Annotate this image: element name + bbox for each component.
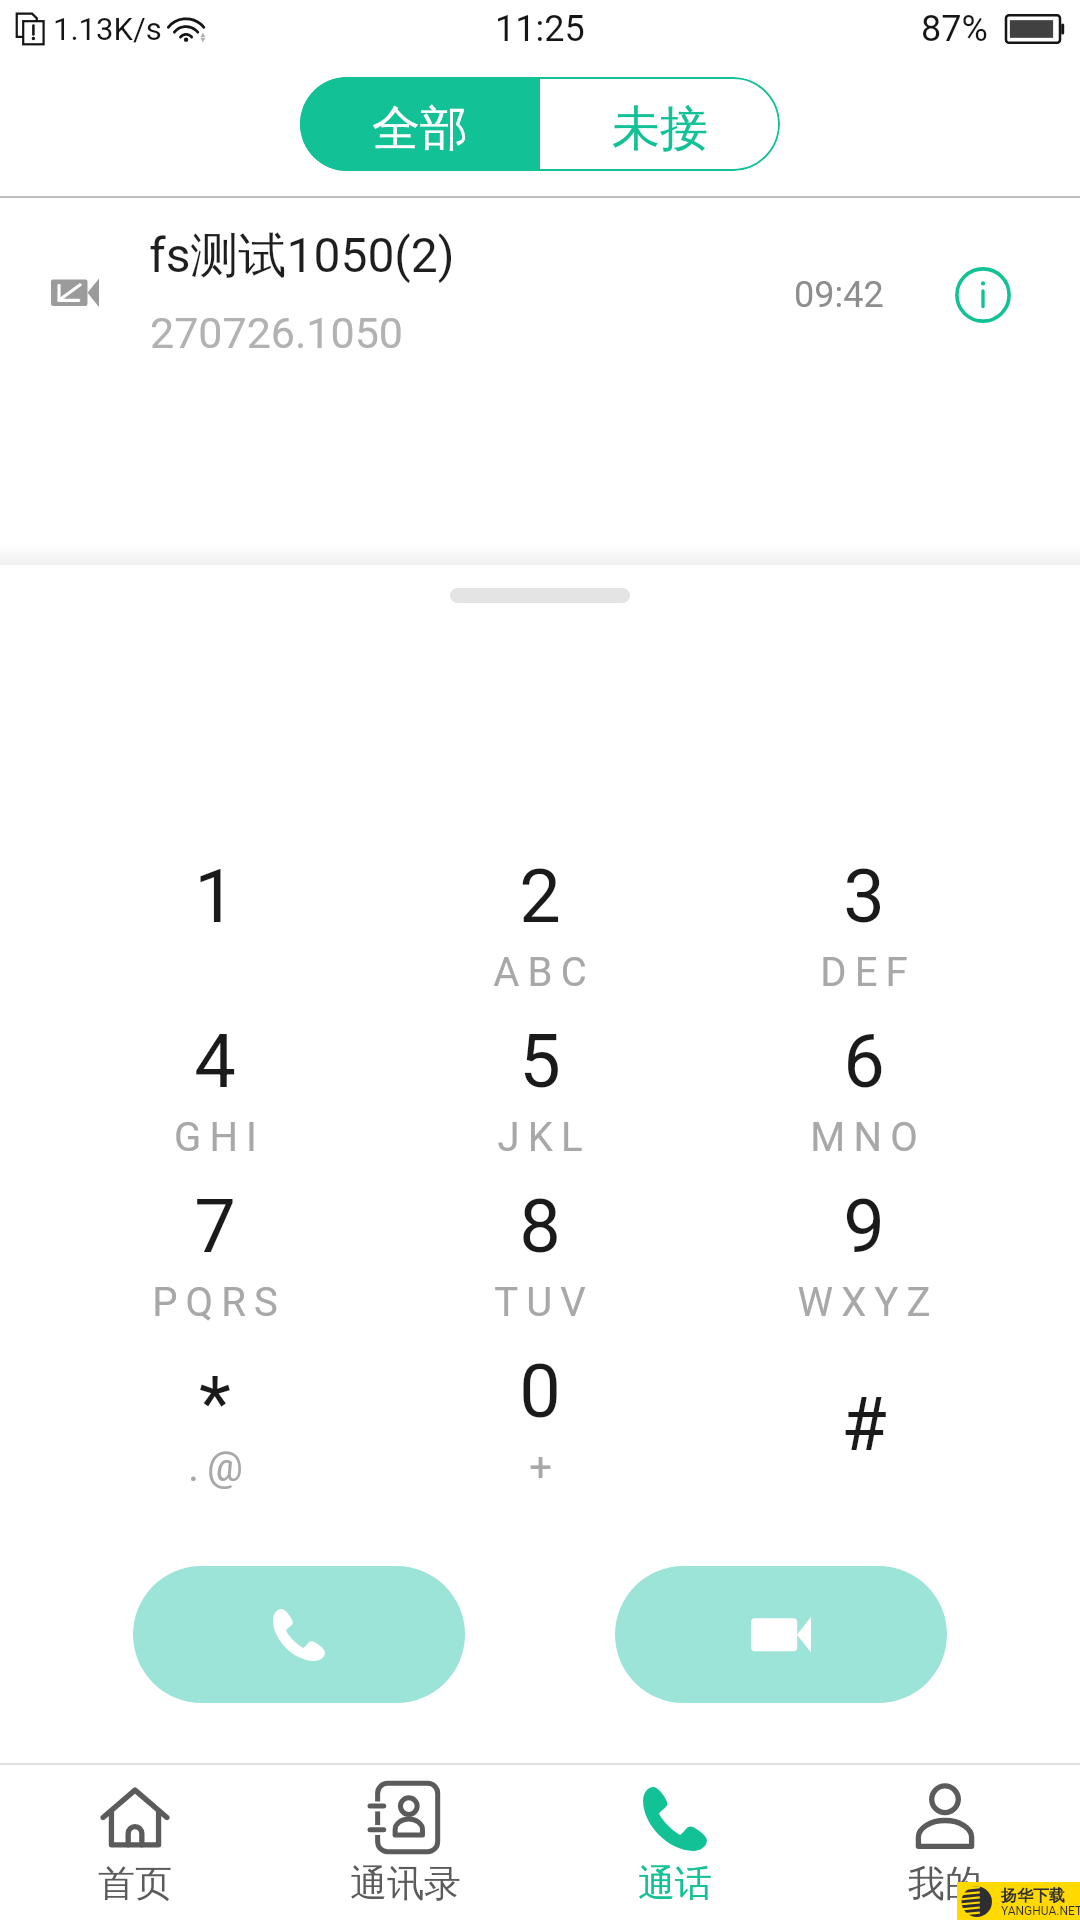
button[interactable]: 2 <box>380 848 700 1013</box>
staticText: 1 <box>194 853 236 940</box>
staticText: 1.13K/s <box>53 11 162 47</box>
staticText: 7 <box>194 1183 236 1270</box>
button[interactable]: 首页 <box>0 1765 270 1920</box>
button[interactable]: 我的 <box>810 1765 1080 1920</box>
button[interactable]: 5 <box>380 1013 700 1178</box>
staticText: # <box>841 1381 887 1468</box>
staticText: 扬华下载 <box>1001 1886 1065 1906</box>
staticText: 87% <box>921 8 988 50</box>
button[interactable]: 4 <box>55 1013 375 1178</box>
staticText: fs测试1050(2) <box>149 226 455 286</box>
staticText: M N O <box>810 1114 918 1161</box>
staticText: 我的 <box>908 1860 982 1907</box>
staticText: A B C <box>493 949 587 996</box>
staticText: 通讯录 <box>350 1860 461 1907</box>
button[interactable]: 0 <box>380 1343 700 1508</box>
staticText: D E F <box>820 949 908 996</box>
staticText: 11:25 <box>495 8 585 50</box>
button[interactable]: 通话 <box>540 1765 810 1920</box>
button[interactable]: 8 <box>380 1178 700 1343</box>
staticText: 5 <box>519 1018 561 1105</box>
button[interactable]: 9 <box>704 1178 1024 1343</box>
button[interactable]: 未接 <box>540 77 780 171</box>
staticText: 全部 <box>372 99 468 159</box>
button[interactable]: * <box>55 1343 375 1508</box>
staticText: T U V <box>494 1279 586 1326</box>
staticText: YANGHUA.NET <box>1001 1904 1080 1918</box>
staticText: + <box>529 1444 552 1491</box>
button[interactable]: # <box>704 1343 1024 1508</box>
button[interactable]: 3 <box>704 848 1024 1013</box>
staticText: W X Y Z <box>797 1279 931 1326</box>
staticText: 0 <box>519 1348 561 1435</box>
button[interactable]: Voice call <box>133 1566 465 1703</box>
staticText: J K L <box>497 1114 583 1161</box>
button[interactable]: 7 <box>55 1178 375 1343</box>
button[interactable]: Call details <box>913 225 1053 365</box>
staticText: 8 <box>519 1183 561 1270</box>
staticText: . @ <box>188 1444 243 1491</box>
staticText: 通话 <box>638 1860 712 1907</box>
staticText: 6 <box>843 1018 885 1105</box>
staticText: 9 <box>843 1183 885 1270</box>
button[interactable]: 通讯录 <box>270 1765 540 1920</box>
staticText: 2 <box>519 853 561 940</box>
staticText: * <box>199 1360 231 1447</box>
button[interactable]: 6 <box>704 1013 1024 1178</box>
staticText: 09:42 <box>794 274 884 316</box>
button[interactable]: 1 <box>55 848 375 1013</box>
staticText: 未接 <box>612 99 708 159</box>
staticText: P Q R S <box>152 1279 278 1326</box>
button[interactable]: fs测试1050(2) <box>0 198 1080 388</box>
staticText: G H I <box>174 1114 257 1161</box>
staticText: 3 <box>843 853 885 940</box>
staticText: 270726.1050 <box>150 308 404 358</box>
staticText: 首页 <box>98 1860 172 1907</box>
staticText: 4 <box>194 1018 236 1105</box>
button[interactable]: Video call <box>615 1566 947 1703</box>
button[interactable]: 全部 <box>300 77 540 171</box>
